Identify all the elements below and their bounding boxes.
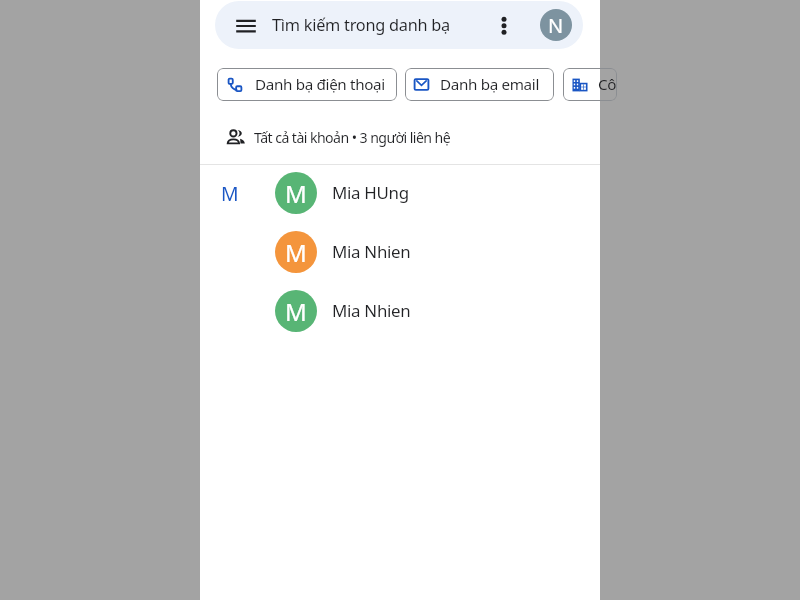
- button[interactable]: Account: [540, 9, 572, 41]
- staticText: Danh bạ điện thoại: [255, 74, 385, 95]
- staticText: Tìm kiếm trong danh bạ: [272, 14, 451, 36]
- button[interactable]: More options: [489, 11, 518, 40]
- button[interactable]: M: [200, 163, 600, 222]
- button[interactable]: M: [200, 281, 600, 340]
- staticText: M: [285, 236, 307, 269]
- staticText: Mia Nhien: [332, 240, 411, 263]
- staticText: Công ty: [598, 74, 617, 95]
- button[interactable]: Open navigation menu: [231, 10, 261, 40]
- button[interactable]: M: [200, 222, 600, 281]
- button[interactable]: Công ty: [563, 68, 617, 101]
- staticText: M: [221, 180, 239, 206]
- staticText: N: [548, 12, 564, 39]
- button[interactable]: Open navigation menu: [215, 1, 583, 49]
- staticText: M: [285, 177, 307, 210]
- staticText: Mia Nhien: [332, 299, 411, 322]
- button[interactable]: Danh bạ email: [405, 68, 554, 101]
- button[interactable]: Danh bạ điện thoại: [217, 68, 397, 101]
- button[interactable]: Tất cả tài khoản • 3 người liên hệ: [200, 117, 600, 157]
- staticText: Danh bạ email: [440, 74, 539, 95]
- staticText: Mia HUng: [332, 181, 409, 204]
- staticText: M: [285, 295, 307, 328]
- staticText: Tất cả tài khoản • 3 người liên hệ: [254, 128, 451, 147]
